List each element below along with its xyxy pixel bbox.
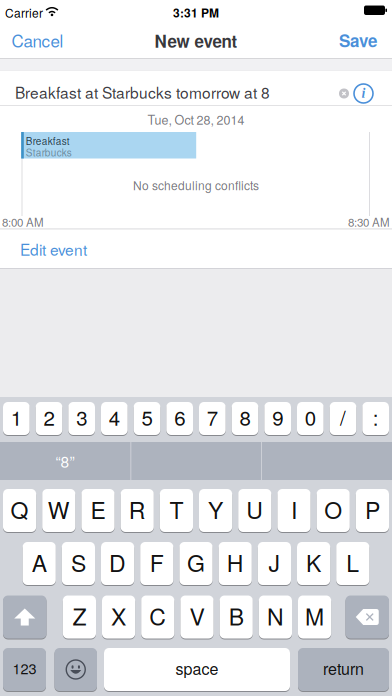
button[interactable]: N bbox=[259, 595, 292, 639]
button[interactable]: P bbox=[356, 489, 389, 533]
staticText: A bbox=[32, 545, 47, 578]
staticText: 5 bbox=[141, 402, 152, 432]
button[interactable]: Save bbox=[326, 20, 390, 60]
staticText: X bbox=[111, 599, 126, 632]
button[interactable]: Breakfast at Starbucks tomorrow at 8 bbox=[0, 71, 392, 105]
staticText: 7 bbox=[207, 402, 218, 432]
staticText: 6 bbox=[174, 402, 185, 432]
staticText: 123 bbox=[12, 658, 36, 678]
staticText: O bbox=[324, 492, 342, 525]
staticText: 1 bbox=[11, 402, 22, 432]
button[interactable]: D bbox=[101, 542, 134, 586]
button[interactable]: G bbox=[179, 542, 213, 586]
staticText: I bbox=[291, 492, 297, 525]
button[interactable]: R bbox=[121, 489, 154, 533]
staticText: No scheduling conflicts bbox=[133, 176, 259, 194]
button[interactable]: Delete bbox=[345, 595, 389, 639]
staticText: Carrier bbox=[5, 4, 43, 21]
button[interactable]: E bbox=[81, 489, 115, 533]
button[interactable]: L bbox=[336, 542, 369, 586]
button[interactable]: : bbox=[362, 402, 389, 436]
staticText: Breakfast bbox=[26, 133, 70, 148]
staticText: C bbox=[149, 599, 166, 632]
button[interactable]: V bbox=[180, 595, 214, 639]
button[interactable]: C bbox=[141, 595, 174, 639]
staticText: 8:00 AM bbox=[2, 213, 44, 230]
button[interactable]: Shift bbox=[3, 595, 46, 639]
button[interactable]: Emoji bbox=[54, 648, 97, 692]
button[interactable]: 123 bbox=[3, 648, 46, 692]
staticText: Breakfast at Starbucks tomorrow at 8 bbox=[15, 81, 270, 103]
button[interactable]: 7 bbox=[199, 402, 226, 436]
button[interactable]: 4 bbox=[101, 402, 128, 436]
staticText: M bbox=[305, 599, 324, 632]
button[interactable]: 3 bbox=[68, 402, 95, 436]
staticText: V bbox=[189, 599, 204, 632]
staticText: “8” bbox=[55, 450, 74, 472]
staticText: Z bbox=[72, 599, 86, 632]
staticText: : bbox=[373, 402, 379, 432]
staticText: E bbox=[90, 492, 105, 525]
staticText: F bbox=[150, 545, 164, 578]
staticText: space bbox=[175, 656, 218, 679]
button[interactable]: Edit event bbox=[0, 228, 107, 270]
button[interactable]: space bbox=[104, 648, 290, 692]
button[interactable]: return bbox=[298, 648, 389, 692]
staticText: 4 bbox=[109, 402, 120, 432]
staticText: L bbox=[346, 545, 359, 578]
staticText: N bbox=[267, 599, 284, 632]
staticText: D bbox=[109, 545, 126, 578]
staticText: 0 bbox=[305, 402, 316, 432]
button[interactable]: B bbox=[220, 595, 253, 639]
staticText: Cancel bbox=[11, 28, 63, 52]
staticText: 3 bbox=[76, 402, 87, 432]
button[interactable]: 0 bbox=[297, 402, 324, 436]
staticText: T bbox=[169, 492, 183, 525]
button[interactable]: Z bbox=[63, 595, 96, 639]
button[interactable]: J bbox=[258, 542, 291, 586]
staticText: Edit event bbox=[20, 238, 87, 260]
button[interactable]: O bbox=[317, 489, 350, 533]
staticText: Q bbox=[11, 492, 29, 525]
staticText: i bbox=[361, 85, 365, 101]
button[interactable]: M bbox=[298, 595, 331, 639]
button[interactable]: Cancel bbox=[0, 20, 75, 60]
button[interactable]: U bbox=[238, 489, 271, 533]
button[interactable]: F bbox=[140, 542, 173, 586]
button[interactable]: Clear text bbox=[339, 88, 349, 98]
staticText: B bbox=[229, 599, 244, 632]
button[interactable]: W bbox=[42, 489, 75, 533]
button[interactable]: 9 bbox=[264, 402, 291, 436]
staticText: 2 bbox=[43, 402, 54, 432]
staticText: S bbox=[71, 545, 86, 578]
button[interactable]: X bbox=[102, 595, 135, 639]
staticText: U bbox=[246, 492, 263, 525]
button[interactable]: A bbox=[23, 542, 56, 586]
button[interactable]: H bbox=[219, 542, 252, 586]
staticText: 9 bbox=[272, 402, 283, 432]
button[interactable]: T bbox=[160, 489, 193, 533]
button[interactable]: / bbox=[330, 402, 356, 436]
button[interactable]: 1 bbox=[3, 402, 30, 436]
button[interactable]: “8” bbox=[0, 442, 130, 480]
staticText: 8:30 AM bbox=[348, 213, 390, 230]
button[interactable]: 5 bbox=[134, 402, 160, 436]
staticText: 8 bbox=[239, 402, 250, 432]
button[interactable]: I bbox=[277, 489, 311, 533]
staticText: Y bbox=[208, 492, 223, 525]
staticText: New event bbox=[154, 28, 237, 53]
button[interactable]: 6 bbox=[166, 402, 193, 436]
button[interactable]: 2 bbox=[36, 402, 62, 436]
button[interactable]: 8 bbox=[232, 402, 258, 436]
staticText: K bbox=[306, 545, 321, 578]
button[interactable]: Y bbox=[199, 489, 232, 533]
staticText: J bbox=[268, 545, 280, 578]
staticText: H bbox=[227, 545, 244, 578]
button[interactable]: K bbox=[297, 542, 330, 586]
button[interactable]: Event details bbox=[354, 84, 373, 103]
staticText: P bbox=[365, 492, 380, 525]
staticText: / bbox=[340, 402, 346, 432]
button[interactable]: S bbox=[62, 542, 95, 586]
staticText: 3:31 PM bbox=[173, 4, 219, 21]
button[interactable]: Q bbox=[3, 489, 36, 533]
